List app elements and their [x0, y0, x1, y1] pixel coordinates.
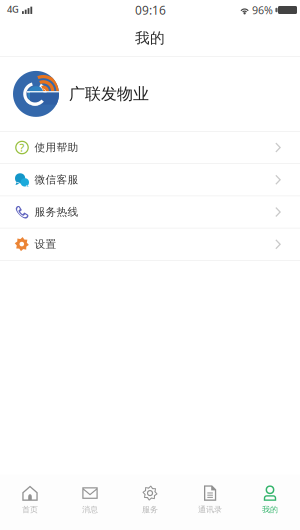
staticText: 我的: [135, 29, 165, 47]
button[interactable]: 我的: [240, 474, 300, 530]
button[interactable]: ?: [0, 132, 300, 164]
button[interactable]: 设置: [0, 229, 300, 261]
staticText: 4G: [7, 3, 19, 15]
staticText: 96%: [252, 3, 273, 17]
staticText: 09:16: [135, 2, 166, 18]
button[interactable]: 服务热线: [0, 196, 300, 228]
staticText: 服务热线: [34, 205, 78, 219]
staticText: 设置: [34, 238, 56, 251]
staticText: ?: [19, 141, 24, 155]
button[interactable]: 通讯录: [180, 474, 240, 530]
staticText: 消息: [82, 505, 98, 515]
staticText: 使用帮助: [34, 141, 78, 154]
staticText: 通讯录: [198, 505, 222, 515]
button[interactable]: 首页: [0, 474, 60, 530]
button[interactable]: 服务: [120, 474, 180, 530]
staticText: 我的: [262, 505, 278, 515]
button[interactable]: 微信客服: [0, 164, 300, 196]
staticText: 微信客服: [34, 173, 78, 186]
staticText: 广联发物业: [69, 84, 149, 104]
button[interactable]: 消息: [60, 474, 120, 530]
staticText: 首页: [22, 505, 38, 515]
staticText: 服务: [142, 505, 158, 515]
